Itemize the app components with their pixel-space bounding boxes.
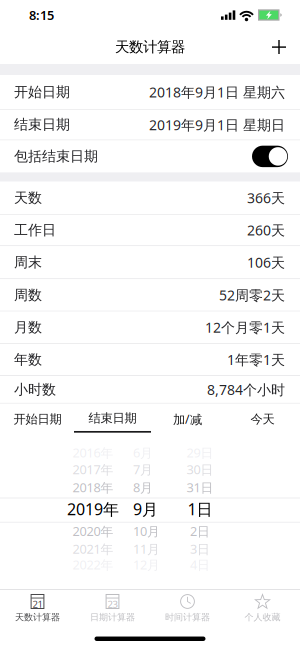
staticText: 今天 [250, 411, 274, 427]
staticText: 29日 [186, 444, 213, 461]
staticText: 4日 [190, 556, 210, 573]
staticText: 6月 [133, 444, 153, 461]
staticText: 2019年 [67, 498, 119, 520]
staticText: 2022年 [72, 556, 113, 573]
button[interactable]: 今天 [225, 404, 300, 434]
staticText: 8:15 [29, 6, 54, 24]
staticText: 结束日期 [14, 116, 70, 133]
button[interactable]: 23 [75, 590, 150, 631]
staticText: 天数计算器 [115, 38, 185, 56]
staticText: 10月 [133, 522, 160, 540]
staticText: 30日 [186, 461, 213, 478]
staticText: 2018年 [72, 479, 113, 496]
staticText: 366天 [247, 188, 285, 207]
staticText: 小时数 [14, 381, 56, 398]
staticText: 日期计算器 [90, 611, 135, 623]
staticText: 周数 [14, 286, 42, 304]
staticText: 开始日期 [13, 411, 61, 427]
button[interactable]: 开始日期 [0, 404, 75, 434]
staticText: 月数 [14, 318, 42, 336]
staticText: 12个月零1天 [205, 318, 285, 337]
staticText: 23 [107, 597, 117, 611]
staticText: 11月 [133, 540, 160, 557]
button[interactable]: 个人收藏 [225, 590, 300, 631]
staticText: 2020年 [72, 522, 113, 540]
staticText: 52周零2天 [219, 285, 285, 305]
staticText: 包括结束日期 [14, 148, 98, 165]
button[interactable]: Add [263, 31, 295, 63]
staticText: 天数 [14, 189, 42, 207]
staticText: 天数计算器 [15, 611, 60, 623]
button[interactable]: 工作日 [0, 215, 300, 245]
staticText: 2021年 [72, 540, 113, 557]
button[interactable]: 加/减 [150, 404, 225, 434]
staticText: 2019年9月1日 星期日 [149, 115, 285, 134]
button[interactable]: 时间计算器 [150, 590, 225, 631]
staticText: 开始日期 [14, 83, 70, 101]
staticText: 2018年9月1日 星期六 [149, 82, 285, 102]
staticText: 2日 [190, 522, 210, 540]
staticText: 8月 [133, 479, 153, 496]
staticText: 7月 [133, 461, 153, 478]
button[interactable]: 结束日期 [75, 404, 150, 434]
button[interactable]: 天数 [0, 182, 300, 214]
button[interactable]: 年数 [0, 344, 300, 375]
staticText: 周末 [14, 253, 42, 271]
staticText: 1日 [187, 498, 212, 520]
staticText: 260天 [247, 221, 285, 240]
button[interactable]: 包括结束日期 [0, 140, 300, 172]
staticText: 8,784个小时 [207, 380, 285, 399]
staticText: 3日 [190, 540, 210, 557]
button[interactable]: 21 [0, 590, 75, 631]
staticText: 年数 [14, 351, 42, 368]
staticText: 9月 [133, 498, 158, 520]
staticText: 加/减 [173, 411, 202, 427]
staticText: 1年零1天 [227, 350, 285, 369]
button[interactable]: 开始日期 [0, 75, 300, 109]
staticText: 31日 [186, 479, 213, 496]
staticText: 2016年 [72, 444, 113, 461]
staticText: 工作日 [14, 221, 56, 239]
staticText: 12月 [133, 556, 160, 573]
button[interactable]: 周末 [0, 246, 300, 278]
staticText: 结束日期 [88, 410, 136, 426]
staticText: 时间计算器 [165, 611, 210, 623]
staticText: 21 [32, 597, 42, 611]
button[interactable]: 周数 [0, 279, 300, 311]
staticText: 106天 [247, 253, 285, 272]
staticText: 2017年 [72, 461, 113, 478]
staticText: 个人收藏 [244, 611, 280, 623]
button[interactable]: 月数 [0, 311, 300, 343]
button[interactable]: 结束日期 [0, 110, 300, 140]
button[interactable]: 小时数 [0, 376, 300, 403]
